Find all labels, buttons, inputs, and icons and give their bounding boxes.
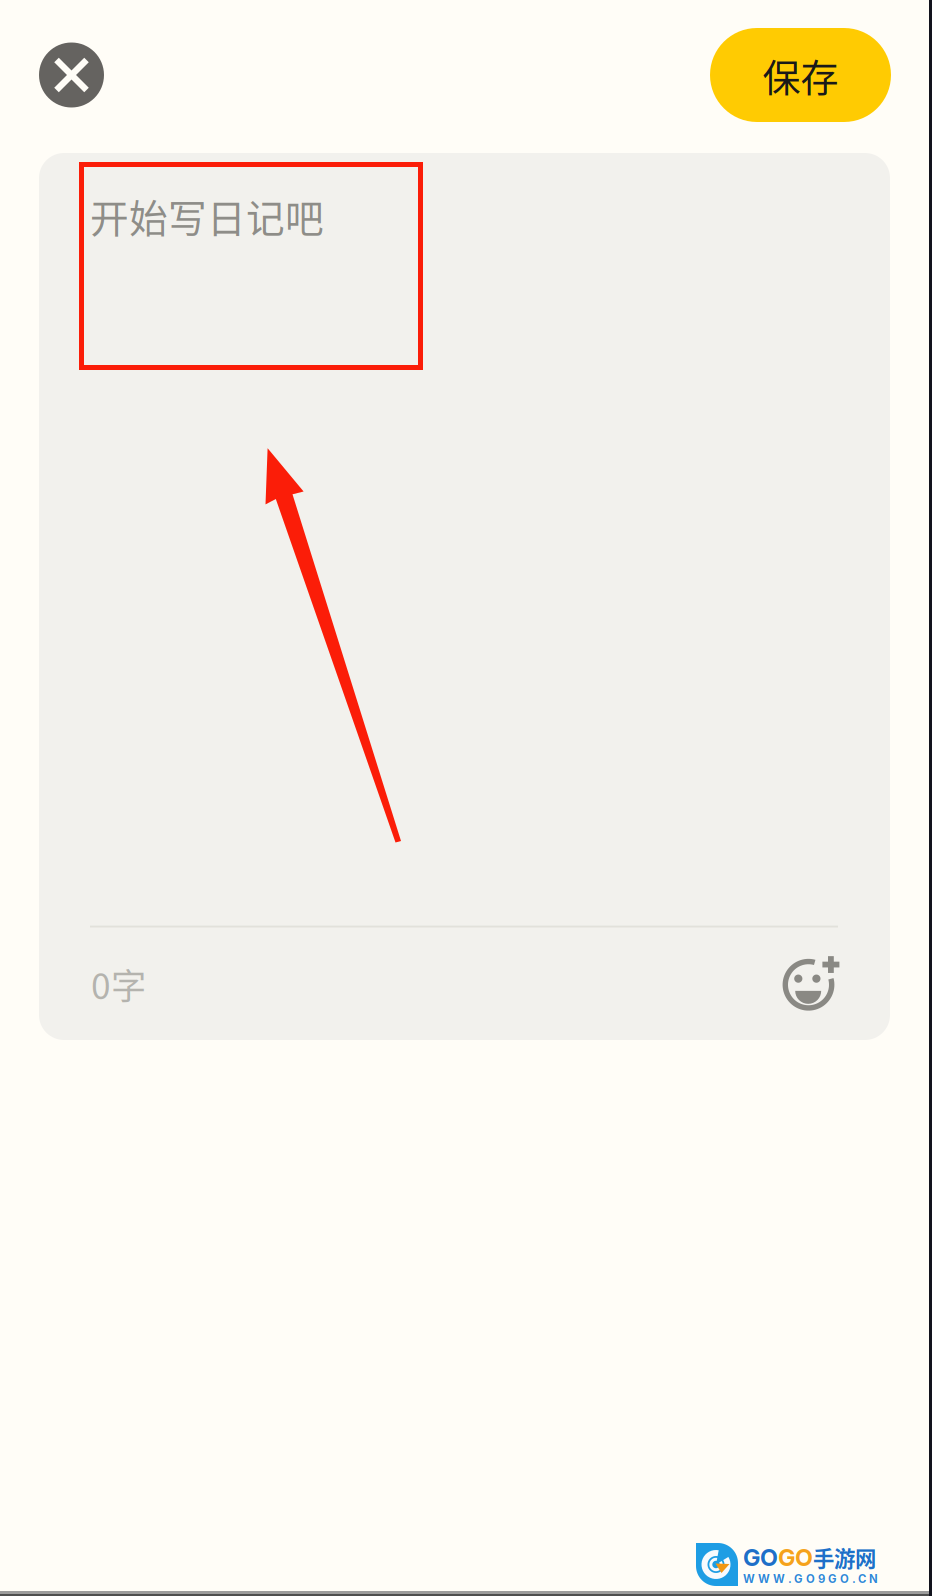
staticText: GO (778, 1543, 813, 1572)
staticText: 保存 (762, 47, 838, 102)
staticText: 开始写日记吧 (90, 188, 324, 244)
button[interactable]: Add emoji (775, 946, 850, 1021)
staticText: W W W . G O 9 G O . C N (743, 1572, 878, 1586)
staticText: GO (743, 1543, 778, 1572)
staticText: 0字 (91, 958, 146, 1009)
button[interactable]: Close (39, 42, 104, 107)
button[interactable]: 保存 (710, 28, 891, 122)
staticText: 手游网 (813, 1542, 876, 1573)
